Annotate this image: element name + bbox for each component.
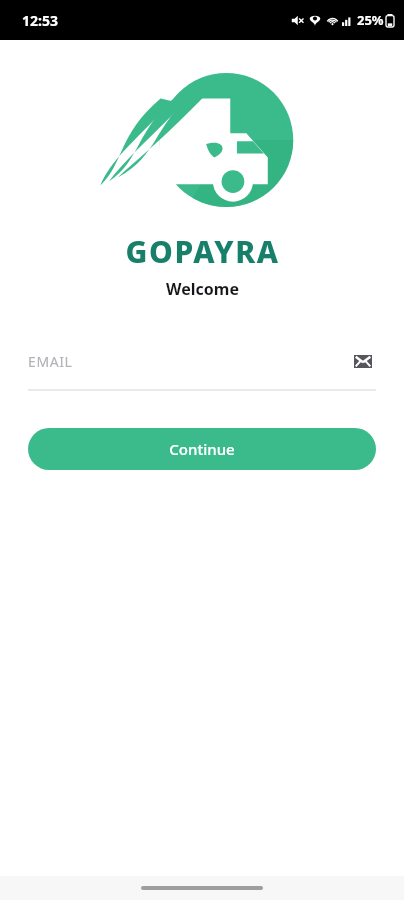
staticText: GOPAYRA	[125, 231, 280, 272]
staticText: Continue	[169, 439, 235, 459]
staticText: Welcome	[166, 278, 239, 300]
button[interactable]: EMAIL	[28, 346, 376, 391]
staticText: 25%	[357, 11, 384, 29]
staticText: EMAIL	[28, 352, 350, 371]
button[interactable]: Email	[350, 348, 376, 374]
button[interactable]: Continue	[28, 428, 376, 470]
staticText: 12:53	[22, 11, 58, 30]
